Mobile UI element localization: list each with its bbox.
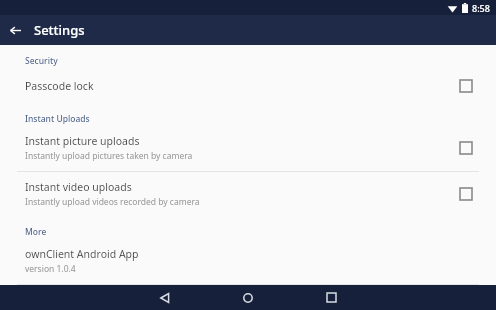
button[interactable]: Back [0,15,30,45]
staticText: Instant video uploads [25,180,132,194]
staticText: Instant picture uploads [25,134,140,148]
button[interactable]: Toggle Instant picture uploads [456,138,476,158]
button[interactable]: Toggle Instant video uploads [456,184,476,204]
staticText: Instantly upload pictures taken by camer… [25,150,193,162]
staticText: Instantly upload videos recorded by came… [25,196,200,208]
button[interactable]: Instant picture uploads [0,126,496,171]
staticText: ownClient Android App [25,247,139,261]
staticText: Passcode lock [25,79,94,93]
staticText: More [25,226,47,238]
button[interactable]: ownClient Android App [0,239,496,284]
button[interactable]: Toggle Passcode lock [456,76,476,96]
button[interactable]: Passcode lock [0,68,496,105]
button[interactable]: Back [145,285,185,310]
staticText: Instant Uploads [25,113,90,125]
button[interactable]: Instant video uploads [0,172,496,217]
button[interactable]: Recent apps [311,285,351,310]
staticText: version 1.0.4 [25,263,76,275]
staticText: Settings [34,21,85,39]
staticText: Security [25,55,58,67]
button[interactable]: Home [228,285,268,310]
staticText: 8:58 [472,2,490,14]
